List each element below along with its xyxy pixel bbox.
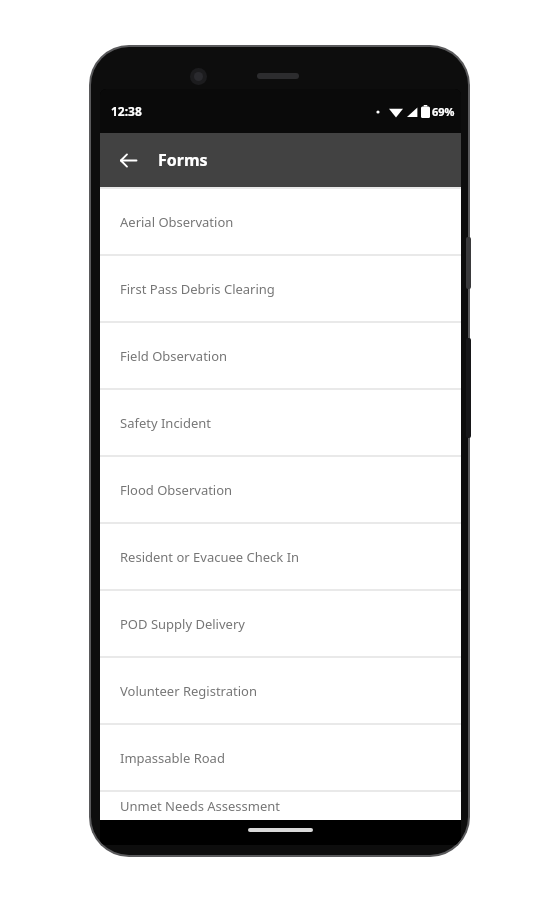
- staticText: Flood Observation: [120, 481, 233, 499]
- staticText: Aerial Observation: [120, 213, 234, 231]
- button[interactable]: Field Observation: [100, 323, 461, 388]
- button[interactable]: Impassable Road: [100, 725, 461, 790]
- staticText: First Pass Debris Clearing: [120, 280, 275, 298]
- staticText: Field Observation: [120, 347, 228, 365]
- staticText: Volunteer Registration: [120, 682, 257, 700]
- staticText: Impassable Road: [120, 749, 225, 767]
- button[interactable]: Volunteer Registration: [100, 658, 461, 723]
- staticText: 12:38: [111, 103, 142, 119]
- button[interactable]: First Pass Debris Clearing: [100, 256, 461, 321]
- staticText: Forms: [158, 149, 208, 171]
- button[interactable]: POD Supply Delivery: [100, 591, 461, 656]
- button[interactable]: Aerial Observation: [100, 189, 461, 254]
- button[interactable]: Back: [108, 140, 148, 180]
- button[interactable]: Resident or Evacuee Check In: [100, 524, 461, 589]
- staticText: 69%: [432, 104, 455, 119]
- button[interactable]: Flood Observation: [100, 457, 461, 522]
- button[interactable]: Unmet Needs Assessment: [100, 792, 461, 820]
- button[interactable]: Safety Incident: [100, 390, 461, 455]
- staticText: POD Supply Delivery: [120, 615, 245, 633]
- staticText: Safety Incident: [120, 414, 212, 432]
- staticText: Unmet Needs Assessment: [120, 797, 281, 815]
- staticText: Resident or Evacuee Check In: [120, 548, 300, 566]
